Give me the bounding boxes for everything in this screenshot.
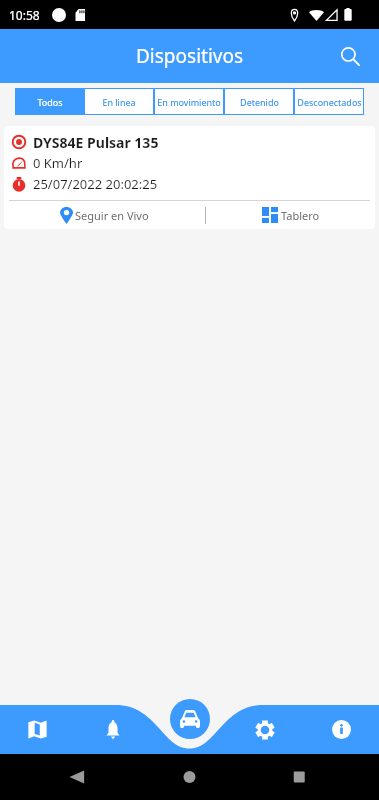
button[interactable]: Vehicles xyxy=(170,699,210,739)
staticText: En linea xyxy=(102,96,136,108)
staticText: Desconectados xyxy=(297,96,362,108)
button[interactable]: Tablero xyxy=(206,201,375,229)
button[interactable]: Info xyxy=(303,705,379,754)
button[interactable]: En linea xyxy=(84,88,154,115)
staticText: Detenido xyxy=(240,96,279,108)
staticText: Dispositivos xyxy=(136,43,244,69)
button[interactable]: Search xyxy=(333,39,367,73)
button[interactable]: Todos xyxy=(15,88,84,115)
button[interactable]: Map xyxy=(0,705,75,754)
staticText: Seguir en Vivo xyxy=(75,208,149,223)
staticText: Tablero xyxy=(281,208,320,223)
button[interactable]: Seguir en Vivo xyxy=(4,201,205,229)
button[interactable]: DYS84E Pulsar 135 xyxy=(4,126,375,229)
staticText: En movimiento xyxy=(157,96,221,108)
button[interactable]: Desconectados xyxy=(294,88,364,115)
button[interactable]: En movimiento xyxy=(154,88,224,115)
staticText: Todos xyxy=(37,96,63,108)
button[interactable]: Detenido xyxy=(224,88,294,115)
staticText: 0 Km/hr xyxy=(33,154,83,172)
staticText: 25/07/2022 20:02:25 xyxy=(33,175,158,193)
button[interactable]: Notifications xyxy=(75,705,151,754)
button[interactable]: Settings xyxy=(227,705,303,754)
staticText: 10:58 xyxy=(9,7,40,23)
staticText: DYS84E Pulsar 135 xyxy=(33,133,159,152)
